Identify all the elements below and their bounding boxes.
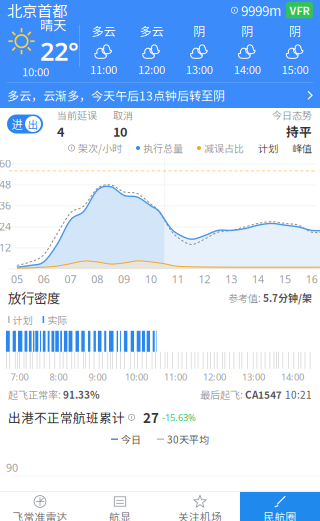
button[interactable]: 进	[7, 114, 43, 133]
staticText: 12:00	[203, 371, 226, 383]
staticText: 14:00	[281, 371, 304, 383]
staticText: 14	[252, 272, 264, 286]
staticText: 计划	[258, 141, 278, 155]
button[interactable]: 关注机场	[160, 492, 240, 521]
staticText: 飞常准雷达	[12, 509, 67, 521]
staticText: 民航圈	[263, 509, 296, 521]
staticText: 13:00	[242, 371, 265, 383]
button[interactable]: 飞常准雷达	[0, 492, 80, 521]
staticText: 北京首都	[7, 0, 67, 21]
staticText: 06	[38, 272, 50, 286]
staticText: -15.63%	[162, 411, 196, 423]
staticText: 11:00	[164, 371, 187, 383]
staticText: CA1547	[245, 387, 282, 402]
staticText: 91.33%	[63, 387, 100, 402]
staticText: 16	[306, 272, 318, 286]
staticText: 阴	[289, 22, 301, 40]
staticText: 计划	[13, 312, 33, 327]
staticText: 最后起飞:	[200, 387, 245, 402]
staticText: 出港不正常航班累计	[8, 408, 125, 426]
staticText: 参考值:	[228, 290, 263, 305]
staticText: 放行密度	[8, 288, 60, 307]
staticText: 实际	[47, 312, 67, 327]
staticText: 07	[64, 272, 76, 286]
staticText: 峰值	[292, 141, 312, 155]
staticText: 5.7分钟/架	[263, 290, 312, 305]
staticText: 10	[113, 122, 127, 140]
staticText: 15	[279, 272, 291, 286]
staticText: 9:00	[88, 371, 106, 383]
staticText: 晴天	[40, 15, 66, 34]
staticText: 12:00	[138, 61, 165, 77]
staticText: 13:00	[186, 61, 213, 77]
staticText: 12	[0, 240, 11, 254]
staticText: 多云，云渐多，今天午后13点钟后转至阴	[7, 87, 225, 104]
staticText: 4	[57, 122, 64, 140]
staticText: 36	[0, 198, 11, 212]
staticText: 24	[0, 219, 11, 233]
staticText: 22°	[40, 34, 79, 68]
staticText: 15:00	[282, 61, 309, 77]
staticText: 出	[27, 116, 38, 132]
staticText: VFR	[289, 2, 309, 18]
staticText: 航显	[109, 509, 131, 521]
staticText: 今日	[121, 432, 141, 446]
staticText: 60	[0, 156, 11, 170]
staticText: 架次/小时	[78, 141, 122, 155]
staticText: 08	[91, 272, 103, 286]
staticText: 今日态势	[272, 108, 312, 122]
staticText: 9999m	[241, 0, 281, 20]
button[interactable]: 多云，云渐多，今天午后13点钟后转至阴	[0, 83, 320, 108]
staticText: 14:00	[234, 61, 261, 77]
staticText: 10:00	[125, 371, 148, 383]
staticText: 当前延误	[57, 108, 97, 122]
staticText: 10	[145, 272, 157, 286]
staticText: 关注机场	[178, 509, 222, 521]
button[interactable]: 航显	[80, 492, 160, 521]
staticText: 10:00	[22, 63, 49, 79]
staticText: 90	[6, 460, 18, 475]
staticText: 减误占比	[204, 141, 244, 155]
staticText: 执行总量	[143, 141, 183, 155]
staticText: 8:00	[49, 371, 67, 383]
staticText: 阴	[241, 22, 253, 40]
staticText: 持平	[286, 122, 312, 140]
staticText: 取消	[113, 108, 133, 122]
staticText: 多云	[91, 22, 115, 40]
staticText: 09	[118, 272, 130, 286]
staticText: 30天平均	[167, 432, 209, 446]
staticText: 10:21	[285, 387, 312, 402]
staticText: 多云	[139, 22, 163, 40]
staticText: 27	[143, 408, 159, 427]
staticText: 起飞正常率:	[8, 387, 63, 402]
staticText: 12	[198, 272, 210, 286]
staticText: 48	[0, 177, 11, 191]
staticText: 阴	[193, 22, 205, 40]
button[interactable]: 民航圈	[240, 492, 320, 521]
staticText: 11:00	[90, 61, 117, 77]
staticText: 05	[11, 272, 23, 286]
staticText: 7:00	[10, 371, 28, 383]
staticText: 11	[172, 272, 184, 286]
staticText: 进	[11, 116, 22, 132]
staticText: 13	[225, 272, 237, 286]
